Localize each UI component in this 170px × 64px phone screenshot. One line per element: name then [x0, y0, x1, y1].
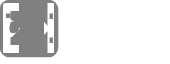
button[interactable]: App badge icon [0, 0, 170, 64]
